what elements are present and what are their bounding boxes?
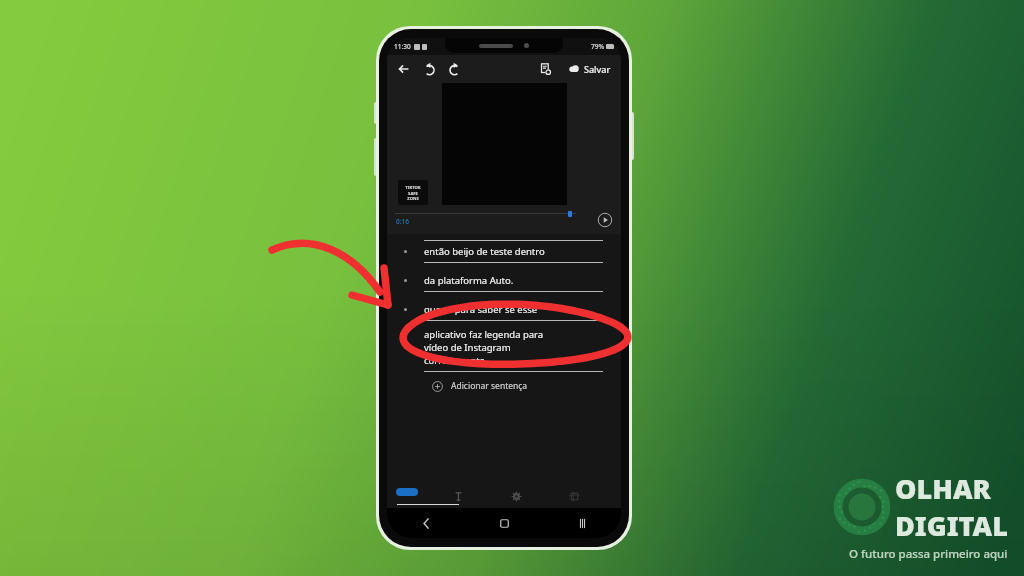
button[interactable]: então beijo de teste dentro: [387, 241, 611, 262]
staticText: OLHAR: [895, 470, 991, 507]
button[interactable]: quepe para saber se esse: [387, 299, 611, 320]
staticText: quepe para saber se esse: [424, 303, 538, 316]
button[interactable]: Style tool: [487, 490, 545, 503]
button[interactable]: Home: [465, 508, 543, 538]
button[interactable]: Redo: [444, 59, 464, 79]
button[interactable]: Play: [596, 211, 614, 229]
button[interactable]: Back: [395, 60, 413, 78]
button[interactable]: Salvar: [566, 61, 613, 77]
button[interactable]: Export: [536, 59, 556, 79]
staticText: da plataforma Auto.: [424, 274, 514, 287]
staticText: 79%: [591, 42, 604, 51]
button[interactable]: Undo: [419, 59, 439, 79]
staticText: corretamente: [424, 354, 485, 367]
button[interactable]: Adicionar sentença: [387, 378, 611, 392]
button[interactable]: Crop tool: [545, 490, 603, 503]
staticText: aplicativo faz legenda para: [424, 328, 544, 341]
button[interactable]: Selected tool: [396, 488, 418, 496]
staticText: então beijo de teste dentro: [424, 245, 545, 258]
staticText: DIGITAL: [895, 507, 1008, 544]
staticText: TIKTOK SAFE ZONE: [405, 185, 421, 201]
button[interactable]: Back: [387, 508, 465, 538]
button[interactable]: aplicativo faz legenda para: [387, 324, 611, 371]
button[interactable]: Recent apps: [543, 508, 621, 538]
button[interactable]: TIKTOK SAFE ZONE: [398, 180, 428, 205]
button[interactable]: da plataforma Auto.: [387, 270, 611, 291]
staticText: 11:30: [394, 42, 411, 51]
staticText: Salvar: [584, 63, 611, 75]
button[interactable]: Text tool: [429, 490, 487, 503]
staticText: 0:16: [396, 217, 409, 226]
staticText: Adicionar sentença: [451, 380, 528, 392]
staticText: O futuro passa primeiro aqui: [849, 546, 1008, 562]
staticText: vídeo de Instagram: [424, 341, 511, 354]
